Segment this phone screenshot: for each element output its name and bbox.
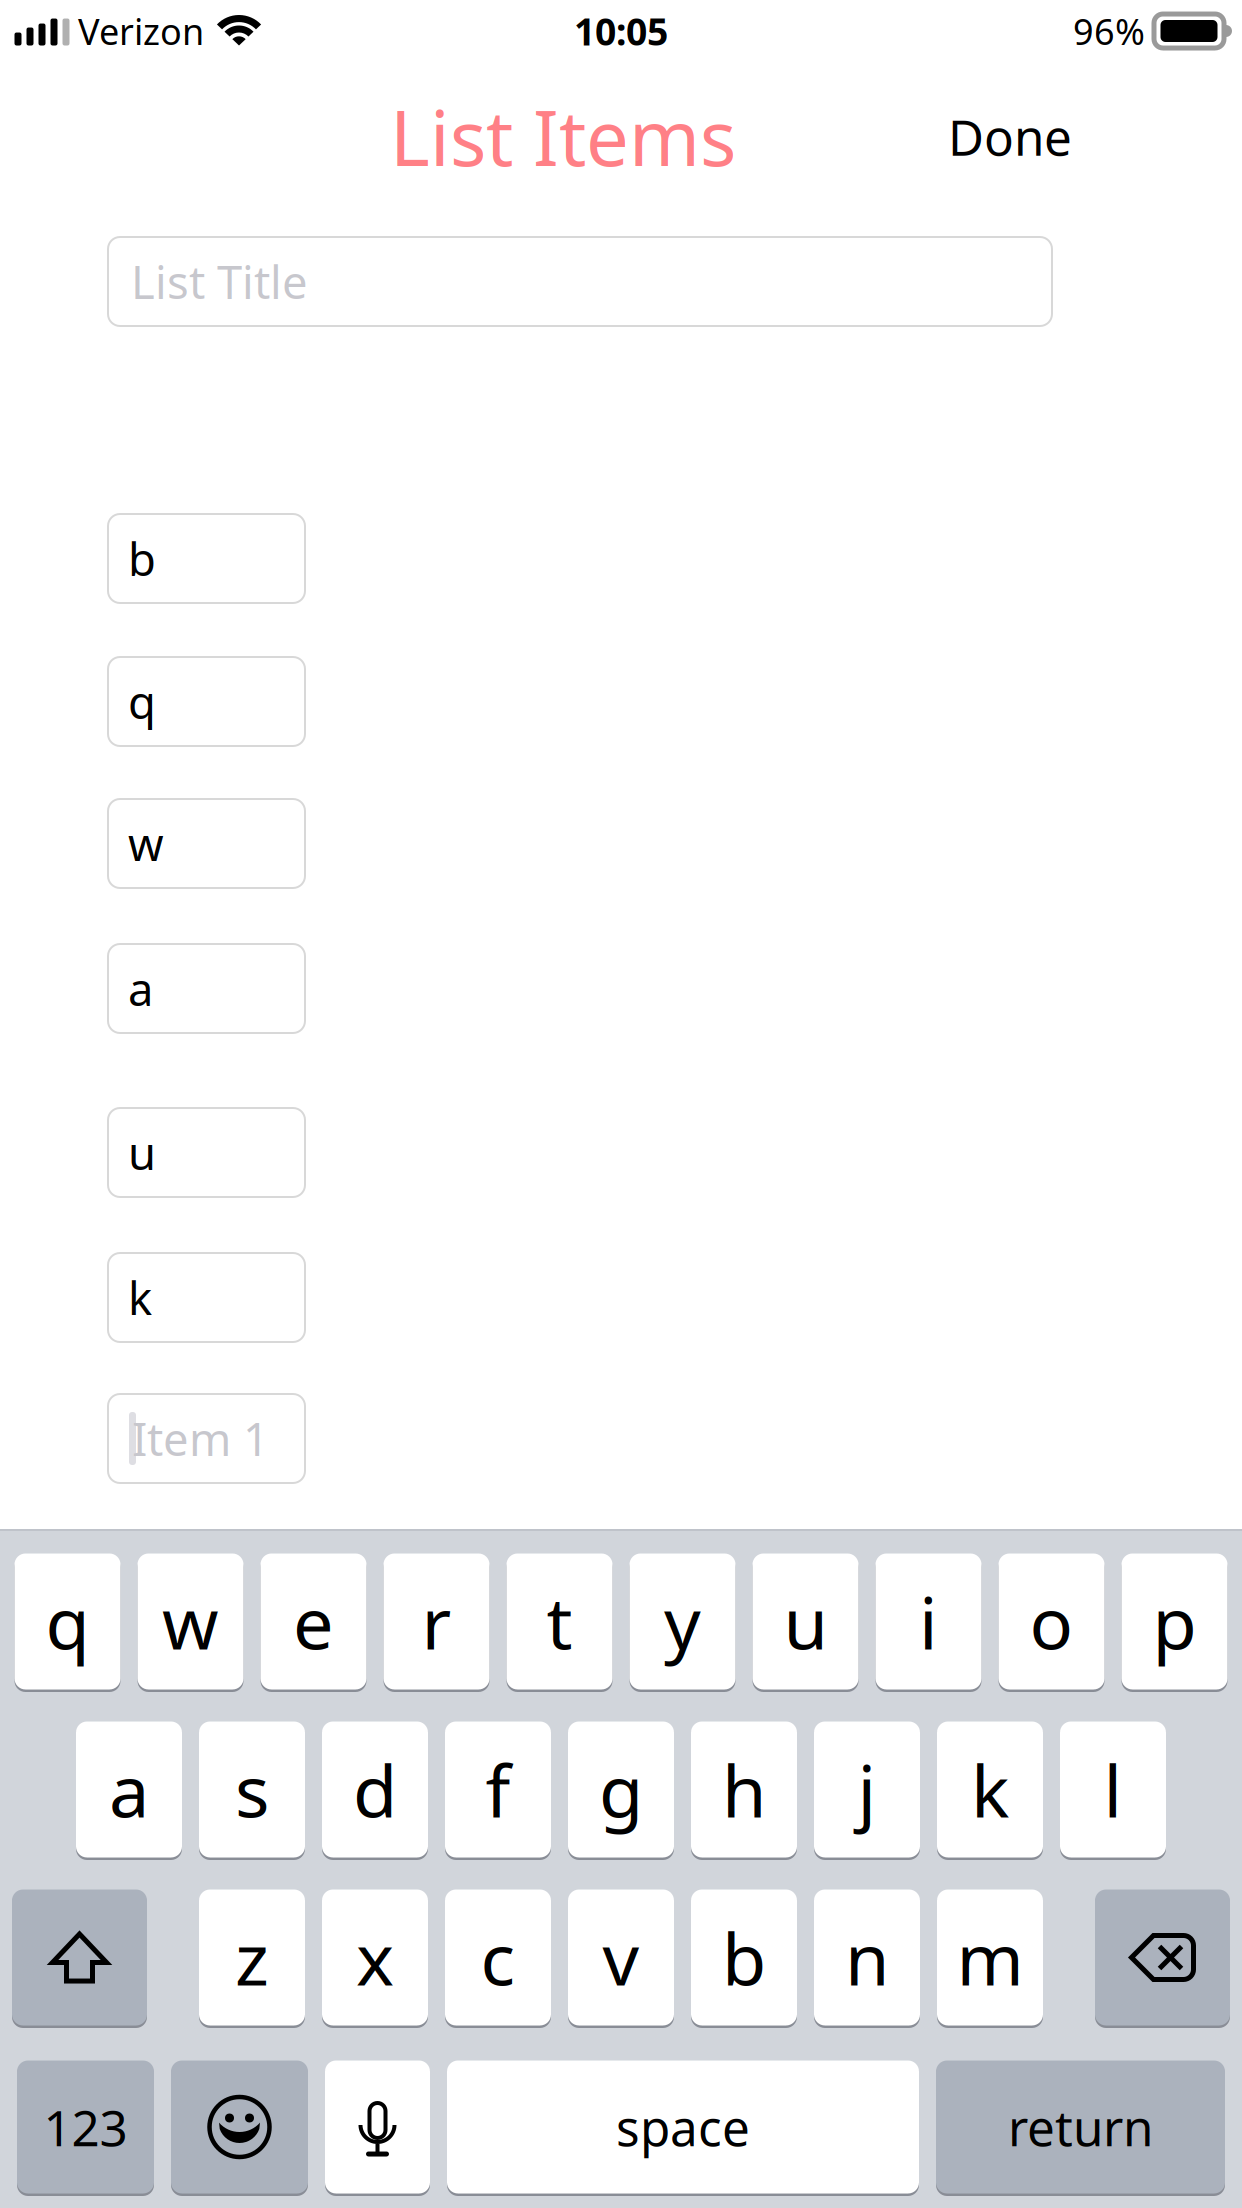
button[interactable]: h: [691, 1720, 797, 1859]
staticText: space: [616, 2094, 750, 2160]
staticText: z: [235, 1910, 269, 2005]
button[interactable]: a: [108, 944, 305, 1033]
staticText: f: [485, 1742, 510, 1837]
staticText: m: [956, 1910, 1023, 2005]
button[interactable]: t: [506, 1552, 612, 1691]
staticText: d: [353, 1742, 397, 1837]
staticText: w: [128, 813, 164, 874]
button[interactable]: u: [108, 1108, 305, 1197]
staticText: e: [293, 1574, 334, 1669]
staticText: w: [162, 1574, 219, 1669]
button[interactable]: g: [568, 1720, 674, 1859]
button[interactable]: j: [814, 1720, 920, 1859]
button[interactable]: b: [108, 514, 305, 603]
button[interactable]: i: [875, 1552, 981, 1691]
staticText: return: [1008, 2094, 1153, 2160]
button[interactable]: c: [445, 1888, 551, 2027]
staticText: a: [109, 1742, 149, 1837]
button[interactable]: y: [629, 1552, 735, 1691]
staticText: o: [1029, 1574, 1073, 1669]
button[interactable]: Emoji: [171, 2059, 308, 2195]
staticText: u: [783, 1574, 827, 1669]
button[interactable]: d: [322, 1720, 428, 1859]
staticText: i: [919, 1574, 938, 1669]
button[interactable]: s: [199, 1720, 305, 1859]
button[interactable]: r: [383, 1552, 489, 1691]
staticText: List Items: [390, 86, 736, 187]
staticText: r: [421, 1574, 451, 1669]
button[interactable]: f: [445, 1720, 551, 1859]
staticText: q: [128, 671, 156, 732]
staticText: j: [857, 1742, 876, 1837]
button[interactable]: m: [937, 1888, 1043, 2027]
button[interactable]: Delete: [1095, 1888, 1230, 2027]
staticText: 10:05: [574, 6, 668, 56]
staticText: Verizon: [78, 7, 204, 55]
button[interactable]: Shift: [12, 1888, 147, 2027]
button[interactable]: l: [1060, 1720, 1166, 1859]
staticText: v: [602, 1910, 639, 2005]
button[interactable]: w: [137, 1552, 243, 1691]
staticText: a: [128, 958, 153, 1019]
staticText: s: [235, 1742, 269, 1837]
staticText: q: [45, 1574, 89, 1669]
button[interactable]: Item 1: [108, 1394, 305, 1483]
button[interactable]: v: [568, 1888, 674, 2027]
staticText: g: [599, 1742, 643, 1837]
button[interactable]: Done: [924, 90, 1096, 182]
button[interactable]: return: [936, 2059, 1225, 2195]
staticText: k: [128, 1267, 152, 1328]
staticText: y: [664, 1574, 701, 1669]
staticText: List Title: [131, 251, 308, 312]
staticText: Item 1: [132, 1408, 269, 1469]
button[interactable]: a: [76, 1720, 182, 1859]
button[interactable]: 123: [17, 2059, 154, 2195]
staticText: k: [971, 1742, 1009, 1837]
staticText: 96%: [1073, 7, 1145, 55]
staticText: l: [1103, 1742, 1122, 1837]
button[interactable]: b: [691, 1888, 797, 2027]
staticText: t: [546, 1574, 572, 1669]
button[interactable]: q: [108, 657, 305, 746]
staticText: b: [722, 1910, 766, 2005]
button[interactable]: p: [1121, 1552, 1227, 1691]
button[interactable]: z: [199, 1888, 305, 2027]
button[interactable]: k: [937, 1720, 1043, 1859]
staticText: h: [722, 1742, 766, 1837]
staticText: 123: [43, 2094, 127, 2160]
button[interactable]: x: [322, 1888, 428, 2027]
staticText: b: [128, 528, 156, 589]
staticText: p: [1152, 1574, 1196, 1669]
button[interactable]: o: [998, 1552, 1104, 1691]
staticText: Done: [948, 104, 1072, 169]
button[interactable]: space: [447, 2059, 919, 2195]
staticText: c: [480, 1910, 515, 2005]
button[interactable]: u: [752, 1552, 858, 1691]
button[interactable]: q: [14, 1552, 120, 1691]
staticText: n: [845, 1910, 889, 2005]
staticText: x: [356, 1910, 394, 2005]
button[interactable]: n: [814, 1888, 920, 2027]
button[interactable]: w: [108, 799, 305, 888]
button[interactable]: k: [108, 1253, 305, 1342]
button[interactable]: e: [260, 1552, 366, 1691]
button[interactable]: Dictate: [325, 2059, 430, 2195]
staticText: u: [128, 1122, 156, 1183]
